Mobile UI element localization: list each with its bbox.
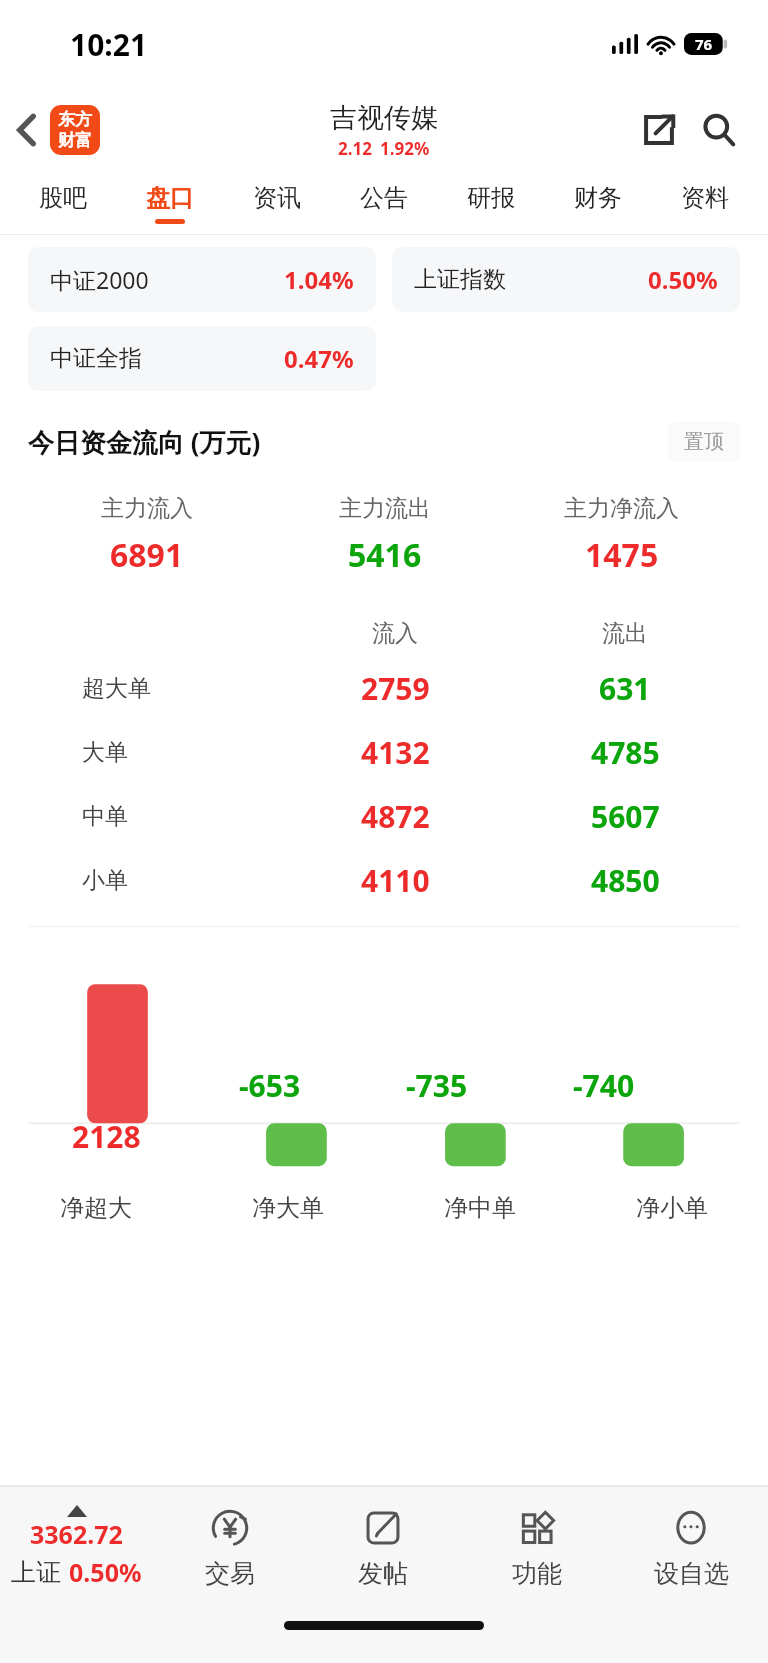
button[interactable]: 主力流入	[28, 474, 740, 597]
button[interactable]: 财务	[544, 172, 651, 234]
button[interactable]: 资讯	[223, 172, 330, 234]
staticText: 净大单	[252, 1193, 324, 1223]
staticText: 流入	[372, 619, 418, 648]
staticText: -653	[239, 1065, 301, 1106]
staticText: 4850	[591, 860, 660, 901]
staticText: 流出	[602, 619, 648, 648]
staticText: 0.50%	[648, 263, 718, 296]
staticText: 上证	[11, 1557, 61, 1588]
staticText: 4872	[361, 796, 430, 837]
button[interactable]: 交易	[153, 1487, 306, 1607]
button[interactable]: 上证指数	[392, 247, 740, 312]
staticText: 5416	[348, 533, 422, 577]
button[interactable]: 发帖	[306, 1487, 460, 1607]
staticText: 2.12	[338, 137, 372, 160]
staticText: -735	[406, 1065, 468, 1106]
staticText: 上证指数	[414, 265, 506, 294]
staticText: 76	[695, 34, 713, 54]
staticText: 中证全指	[50, 344, 142, 373]
staticText: 6891	[110, 533, 184, 577]
button[interactable]: 股吧	[10, 172, 116, 234]
staticText: 净中单	[444, 1193, 516, 1223]
staticText: 研报	[467, 183, 515, 213]
staticText: 主力流入	[101, 494, 193, 523]
button[interactable]: 设自选	[614, 1487, 768, 1607]
staticText: 631	[599, 668, 651, 709]
staticText: 股吧	[39, 183, 87, 213]
staticText: 主力净流入	[564, 494, 679, 523]
button[interactable]: 超大单	[28, 656, 740, 720]
staticText: 1.04%	[284, 263, 354, 296]
button[interactable]: 大单	[28, 720, 740, 784]
staticText: 净超大	[60, 1193, 132, 1223]
staticText: 超大单	[82, 674, 151, 703]
staticText: 中证2000	[50, 264, 149, 295]
staticText: 财务	[574, 183, 622, 213]
staticText: 发帖	[358, 1558, 408, 1589]
staticText: 设自选	[654, 1558, 729, 1589]
staticText: 5607	[591, 796, 660, 837]
staticText: -740	[573, 1065, 635, 1106]
staticText: 4110	[361, 860, 430, 901]
staticText: 3362.72	[30, 1517, 123, 1551]
staticText: 功能	[512, 1558, 562, 1589]
button[interactable]: 置顶	[668, 421, 740, 462]
staticText: 交易	[205, 1558, 255, 1589]
staticText: 小单	[82, 866, 128, 895]
staticText: 4132	[361, 732, 430, 773]
staticText: 主力流出	[339, 494, 431, 523]
staticText: 财富	[58, 130, 92, 151]
button[interactable]: 公告	[330, 172, 437, 234]
staticText: 1.92%	[380, 137, 430, 160]
button[interactable]: 盘口	[116, 172, 223, 234]
staticText: 资讯	[253, 183, 301, 213]
button[interactable]: 研报	[437, 172, 544, 234]
staticText: 2759	[361, 668, 430, 709]
staticText: 今日资金流向 (万元)	[28, 424, 261, 460]
staticText: 2128	[72, 1116, 141, 1157]
button[interactable]: Search	[692, 103, 746, 157]
staticText: 东方	[58, 109, 92, 130]
button[interactable]: 中单	[28, 784, 740, 848]
button[interactable]: 资料	[651, 172, 758, 234]
button[interactable]: 中证全指	[28, 326, 376, 391]
button[interactable]: Back	[8, 99, 108, 161]
staticText: 净小单	[636, 1193, 708, 1223]
button[interactable]: 3362.72	[0, 1487, 153, 1607]
button[interactable]: 小单	[28, 848, 740, 912]
staticText: 吉视传媒	[330, 101, 438, 135]
staticText: 10:21	[70, 24, 148, 65]
staticText: 置顶	[684, 429, 724, 454]
staticText: 0.50%	[69, 1555, 142, 1589]
staticText: 公告	[360, 183, 408, 213]
staticText: 4785	[591, 732, 660, 773]
staticText: 0.47%	[284, 342, 354, 375]
button[interactable]: Share	[632, 103, 686, 157]
staticText: 大单	[82, 738, 128, 767]
staticText: 1475	[585, 533, 659, 577]
button[interactable]: 功能	[460, 1487, 614, 1607]
staticText: 资料	[681, 183, 729, 213]
staticText: 盘口	[146, 183, 194, 213]
staticText: 中单	[82, 802, 128, 831]
button[interactable]: 中证2000	[28, 247, 376, 312]
